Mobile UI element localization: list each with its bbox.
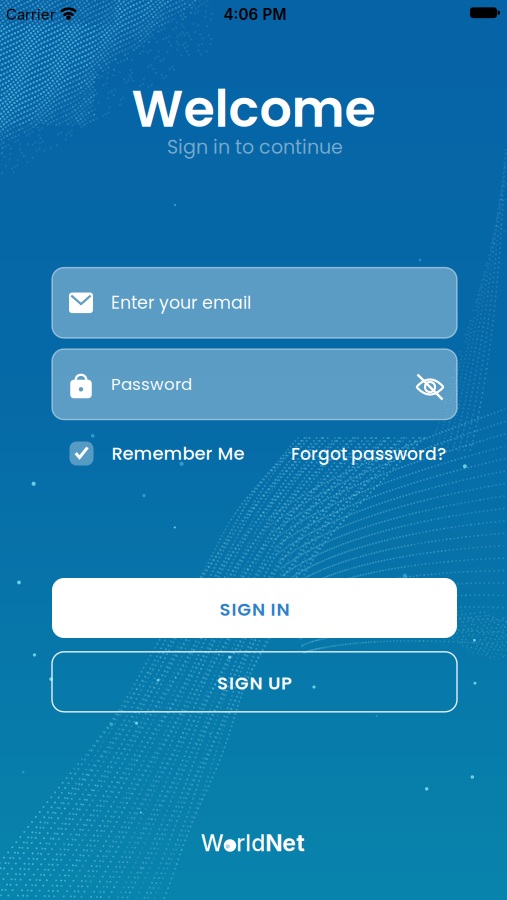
- staticText: Welcome: [131, 73, 375, 144]
- staticText: W: [201, 829, 224, 857]
- button[interactable]: Forgot password?: [291, 442, 446, 466]
- staticText: SIGN UP: [217, 671, 292, 696]
- staticText: Carrier: [6, 6, 56, 23]
- staticText: SIGN IN: [220, 597, 289, 622]
- staticText: 4:06 PM: [223, 5, 286, 24]
- button[interactable]: [408, 365, 452, 409]
- button[interactable]: SIGN IN: [52, 578, 457, 638]
- staticText: rld: [236, 829, 265, 857]
- staticText: Enter your email: [111, 291, 251, 315]
- button[interactable]: Remember Me: [69, 441, 244, 466]
- button[interactable]: SIGN UP: [52, 652, 457, 712]
- staticText: Net: [265, 829, 304, 857]
- button[interactable]: Enter your email: [52, 268, 457, 338]
- staticText: Forgot password?: [291, 442, 446, 466]
- staticText: Remember Me: [111, 441, 244, 466]
- staticText: Password: [111, 373, 192, 396]
- button[interactable]: Password: [52, 349, 457, 420]
- staticText: Sign in to continue: [167, 134, 343, 160]
